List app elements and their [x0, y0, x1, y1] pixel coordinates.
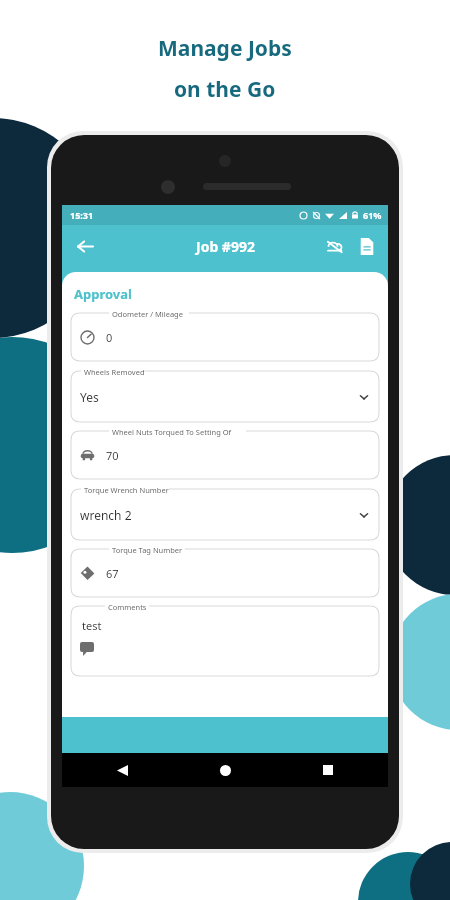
staticText: on the Go [174, 75, 276, 104]
button[interactable]: Torque Tag Number [71, 549, 379, 597]
staticText: wrench 2 [80, 507, 132, 523]
button[interactable]: Back [108, 756, 136, 784]
staticText: test [82, 618, 102, 633]
button[interactable]: Comments [71, 606, 379, 676]
button[interactable]: Back [68, 229, 102, 263]
staticText: 15:31 [70, 209, 94, 221]
button[interactable]: Wheels Removed [71, 371, 379, 422]
staticText: Torque Wrench Number [84, 485, 169, 495]
staticText: Approval [74, 285, 132, 303]
staticText: 67 [106, 566, 119, 581]
button[interactable]: Recents [314, 756, 342, 784]
staticText: Wheels Removed [84, 367, 145, 377]
button[interactable]: Document [350, 230, 382, 262]
staticText: 70 [106, 448, 119, 463]
staticText: Wheel Nuts Torqued To Setting Of [112, 427, 232, 437]
staticText: Odometer / Mileage [112, 309, 183, 319]
staticText: Torque Tag Number [112, 545, 183, 555]
button[interactable]: Torque Wrench Number [71, 489, 379, 540]
staticText: Job #992 [196, 237, 255, 256]
button[interactable]: Odometer / Mileage [71, 313, 379, 361]
button[interactable]: Home [211, 756, 239, 784]
staticText: 61% [363, 209, 382, 221]
staticText: Yes [80, 389, 99, 405]
staticText: Manage Jobs [158, 34, 292, 63]
staticText: Comments [108, 602, 147, 612]
button[interactable]: Wheel Nuts Torqued To Setting Of [71, 431, 379, 479]
button[interactable]: Offline [318, 230, 350, 262]
staticText: 0 [106, 330, 113, 345]
